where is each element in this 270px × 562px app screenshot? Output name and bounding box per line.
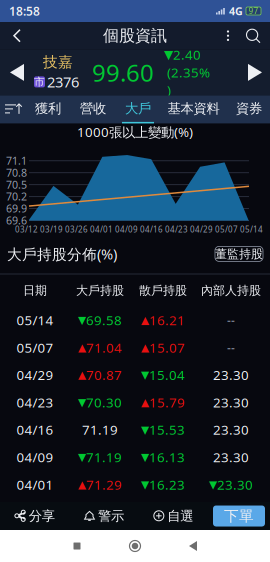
staticText: 04/09 <box>16 448 53 466</box>
staticText: 05/07 <box>16 339 53 356</box>
staticText: 下單 <box>224 507 254 525</box>
staticText: 05/14 <box>16 311 53 329</box>
staticText: 23.30 <box>213 448 249 466</box>
staticText: 市 <box>34 75 45 88</box>
staticText: 獲利 <box>35 100 61 117</box>
staticText: ▼ <box>141 369 149 381</box>
staticText: 23.30 <box>213 421 249 438</box>
staticText: 04/23 <box>165 224 188 235</box>
staticText: 16.23 <box>149 476 185 493</box>
button[interactable]: More options <box>218 22 238 49</box>
staticText: 16.13 <box>149 448 185 466</box>
button[interactable]: 分享 <box>0 502 69 530</box>
staticText: 70.5 <box>6 177 27 192</box>
staticText: 23.30 <box>213 366 249 384</box>
staticText: ▼ <box>141 424 149 436</box>
staticText: 內部人持股 <box>201 283 261 298</box>
staticText: ▼ <box>141 478 149 490</box>
button[interactable]: Home <box>113 530 157 562</box>
staticText: 04/09 <box>115 224 138 235</box>
staticText: 03/26 <box>65 224 88 235</box>
button[interactable]: 自選 <box>139 502 208 530</box>
staticText: 05/07 <box>215 224 238 235</box>
staticText: ▼ <box>164 48 173 61</box>
staticText: 分享 <box>29 508 55 524</box>
staticText: 71.29 <box>86 476 122 493</box>
staticText: 04/01 <box>16 476 53 493</box>
staticText: ▲ <box>141 314 149 326</box>
staticText: ▲ <box>78 478 86 490</box>
staticText: ▲ <box>78 369 86 381</box>
staticText: 70.30 <box>86 393 122 411</box>
staticText: 15.04 <box>149 366 185 384</box>
staticText: 4G <box>229 4 243 18</box>
staticText: (2.35%) <box>167 63 210 99</box>
staticText: 70.8 <box>6 165 27 180</box>
staticText: 日期 <box>23 283 47 298</box>
staticText: ▲ <box>141 396 149 408</box>
button[interactable]: Sort <box>0 95 25 123</box>
button[interactable]: 大戶 <box>115 95 160 123</box>
staticText: 2.40 <box>173 46 201 63</box>
button[interactable]: 獲利 <box>25 95 70 123</box>
staticText: 99.60 <box>92 56 154 88</box>
staticText: -- <box>227 312 235 328</box>
staticText: 23.30 <box>213 393 249 411</box>
button[interactable]: Previous stock <box>0 49 34 95</box>
staticText: 71.1 <box>6 153 27 168</box>
button[interactable]: Back <box>2 22 32 49</box>
staticText: 18:58 <box>9 3 40 19</box>
staticText: 04/29 <box>190 224 213 235</box>
staticText: 71.04 <box>86 339 122 356</box>
button[interactable]: Next stock <box>240 49 270 95</box>
staticText: 大戶持股 <box>76 283 124 298</box>
staticText: 71.19 <box>82 421 118 438</box>
staticText: 技嘉 <box>43 53 73 71</box>
staticText: 69.6 <box>6 213 27 227</box>
staticText: 71.19 <box>86 448 122 466</box>
staticText: 04/16 <box>140 224 163 235</box>
button[interactable]: 營收 <box>70 95 115 123</box>
staticText: 董監持股 <box>215 246 263 261</box>
staticText: 97 <box>248 6 258 16</box>
staticText: ▲ <box>78 341 86 353</box>
staticText: 自選 <box>167 508 193 524</box>
staticText: 69.58 <box>86 311 122 329</box>
staticText: 03/12 <box>15 224 38 235</box>
staticText: ▼ <box>78 314 86 326</box>
staticText: 大戶 <box>125 100 151 117</box>
staticText: 警示 <box>98 508 124 524</box>
staticText: 基本資料 <box>167 100 219 117</box>
staticText: 23.30 <box>217 476 253 493</box>
staticText: 資券 <box>236 100 262 117</box>
button[interactable]: 資券 <box>226 95 270 123</box>
staticText: 04/01 <box>90 224 113 235</box>
staticText: ▼ <box>78 396 86 408</box>
staticText: 69.9 <box>6 201 27 215</box>
staticText: 大戶持股分佈(%) <box>7 244 117 264</box>
staticText: ▼ <box>78 451 86 463</box>
button[interactable]: 董監持股 <box>215 246 263 261</box>
staticText: 個股資訊 <box>103 26 167 46</box>
button[interactable]: Search <box>238 22 268 49</box>
staticText: ▼ <box>209 478 217 490</box>
staticText: 70.87 <box>86 366 122 384</box>
button[interactable]: 下單 <box>208 502 270 530</box>
staticText: 營收 <box>80 100 106 117</box>
staticText: 05/14 <box>240 224 263 235</box>
staticText: 04/16 <box>16 421 53 438</box>
staticText: 04/23 <box>16 393 53 411</box>
staticText: -- <box>227 339 235 355</box>
staticText: 04/29 <box>16 366 53 384</box>
staticText: 03/19 <box>40 224 63 235</box>
button[interactable]: 警示 <box>69 502 139 530</box>
staticText: 16.21 <box>149 311 185 329</box>
staticText: 15.07 <box>149 339 185 356</box>
button[interactable]: 基本資料 <box>160 95 226 123</box>
staticText: ▲ <box>141 341 149 353</box>
staticText: 70.2 <box>6 189 27 204</box>
button[interactable]: Recent apps <box>55 530 99 562</box>
staticText: 15.79 <box>149 393 185 411</box>
button[interactable]: Back <box>171 530 215 562</box>
staticText: ▼ <box>141 451 149 463</box>
